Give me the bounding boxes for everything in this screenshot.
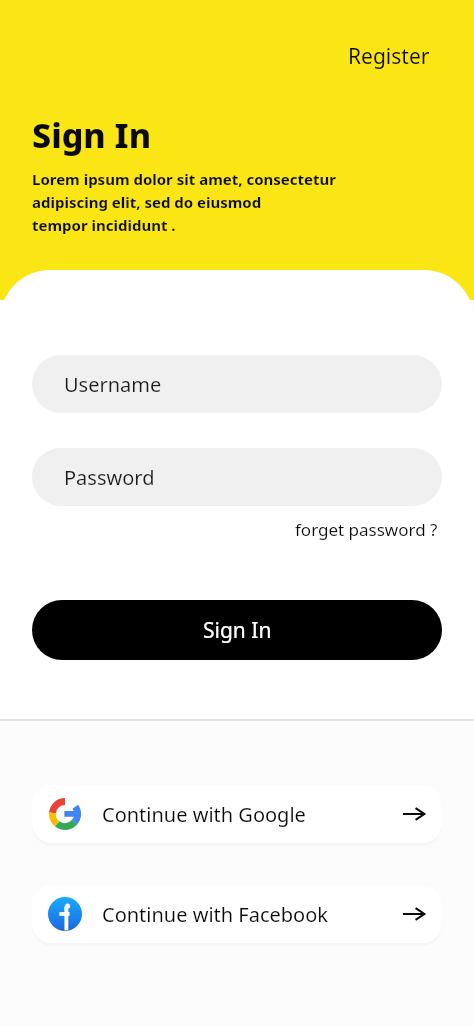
staticText: Sign In (32, 112, 152, 158)
staticText: Sign In (203, 616, 272, 645)
staticText: forget password ? (295, 518, 438, 541)
button[interactable]: forget password ? (291, 513, 442, 546)
button[interactable]: Password (32, 448, 442, 506)
staticText: Continue with Google (102, 801, 306, 828)
staticText: Password (64, 464, 155, 491)
staticText: Lorem ipsum dolor sit amet, consectetur … (32, 169, 336, 235)
button[interactable]: Facebook (32, 885, 442, 943)
other: Google (49, 798, 81, 830)
button[interactable]: Sign In (32, 600, 442, 660)
staticText: Register (348, 42, 430, 71)
button[interactable]: Google (32, 785, 442, 843)
other: Facebook (48, 897, 82, 931)
button[interactable]: Register (338, 36, 440, 77)
button[interactable]: Username (32, 355, 442, 413)
other: Continue (402, 802, 426, 826)
staticText: Continue with Facebook (102, 901, 328, 928)
other: Continue (402, 902, 426, 926)
staticText: Username (64, 371, 162, 398)
